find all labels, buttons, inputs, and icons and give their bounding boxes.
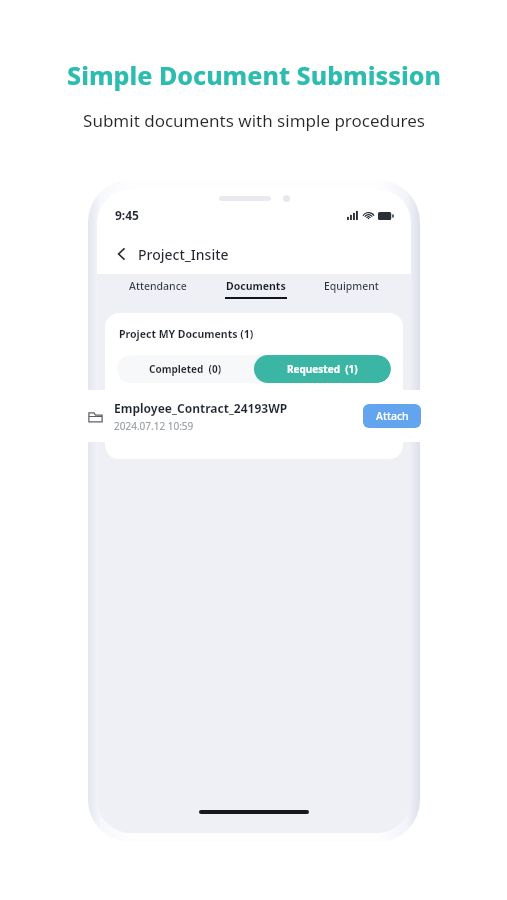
staticText: Submit documents with simple procedures: [83, 109, 425, 132]
staticText: 9:45: [115, 207, 139, 223]
staticText: Completed (0): [149, 362, 222, 376]
button[interactable]: Attendance: [123, 279, 193, 299]
staticText: Employee_Contract_24193WP: [114, 400, 288, 416]
button[interactable]: Completed (0): [117, 355, 254, 383]
staticText: Requested (1): [287, 362, 358, 376]
staticText: 2024.07.12 10:59: [114, 419, 194, 433]
button[interactable]: Back: [111, 243, 133, 265]
staticText: Attendance: [129, 279, 187, 293]
staticText: Equipment: [324, 279, 379, 293]
staticText: Attach: [376, 409, 409, 423]
button[interactable]: Equipment: [318, 279, 385, 299]
staticText: Simple Document Submission: [67, 58, 441, 92]
staticText: Project_Insite: [138, 245, 229, 264]
button[interactable]: Attach: [363, 404, 421, 428]
button[interactable]: Documents: [219, 279, 293, 299]
button[interactable]: Requested (1): [254, 355, 391, 383]
button[interactable]: Employee_Contract_24193WP: [72, 390, 435, 442]
staticText: Documents: [226, 279, 286, 293]
staticText: Project MY Documents (1): [119, 327, 254, 341]
